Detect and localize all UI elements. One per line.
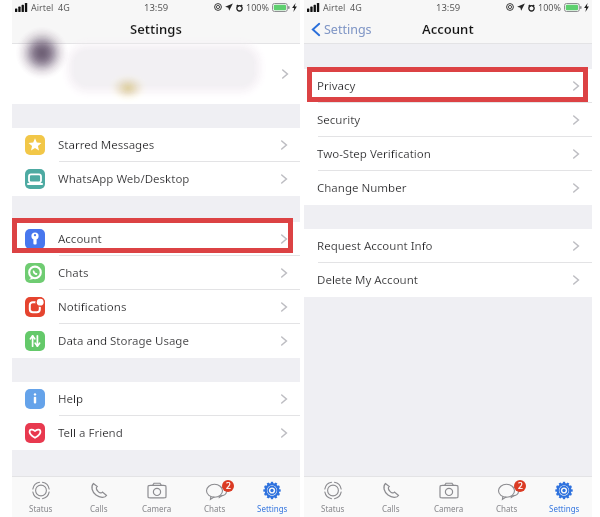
- staticText: 100%: [538, 1, 561, 13]
- staticText: Change Number: [317, 180, 407, 196]
- staticText: WhatsApp Web/Desktop: [58, 171, 190, 187]
- staticText: Notifications: [58, 299, 127, 315]
- staticText: 4G: [350, 1, 362, 13]
- staticText: Delete My Account: [317, 272, 418, 288]
- button[interactable]: Account: [12, 222, 300, 256]
- staticText: 13:59: [144, 1, 169, 14]
- staticText: Request Account Info: [317, 238, 433, 254]
- staticText: Account: [422, 20, 474, 38]
- button[interactable]: Status: [12, 477, 70, 517]
- button[interactable]: Tell a Friend: [12, 416, 300, 450]
- button[interactable]: Data and Storage Usage: [12, 324, 300, 358]
- button[interactable]: Calls: [362, 477, 420, 517]
- staticText: 4G: [58, 1, 70, 13]
- staticText: Chats: [204, 503, 226, 514]
- staticText: 2: [226, 480, 231, 492]
- staticText: Two-Step Verification: [317, 146, 431, 162]
- staticText: Settings: [549, 503, 580, 514]
- button[interactable]: Camera: [420, 477, 478, 517]
- staticText: Security: [317, 112, 361, 128]
- staticText: Account: [58, 231, 102, 247]
- button[interactable]: Calls: [70, 477, 128, 517]
- button[interactable]: 2: [186, 477, 244, 517]
- staticText: Settings: [130, 20, 182, 38]
- button[interactable]: Settings: [244, 477, 300, 517]
- button[interactable]: Request Account Info: [304, 229, 592, 263]
- button[interactable]: Privacy: [304, 69, 592, 103]
- staticText: 2: [518, 480, 523, 492]
- staticText: Settings: [324, 21, 372, 38]
- staticText: Chats: [58, 265, 89, 281]
- staticText: Settings: [257, 503, 288, 514]
- button[interactable]: Camera: [128, 477, 186, 517]
- button[interactable]: Chats: [12, 256, 300, 290]
- button[interactable]: Two-Step Verification: [304, 137, 592, 171]
- staticText: Starred Messages: [58, 137, 155, 153]
- staticText: Calls: [90, 503, 108, 514]
- button[interactable]: [12, 44, 300, 104]
- staticText: Data and Storage Usage: [58, 333, 189, 349]
- staticText: Status: [321, 503, 345, 514]
- staticText: Airtel: [323, 1, 346, 13]
- button[interactable]: Help: [12, 382, 300, 416]
- button[interactable]: Delete My Account: [304, 263, 592, 297]
- staticText: Tell a Friend: [58, 425, 123, 441]
- button[interactable]: WhatsApp Web/Desktop: [12, 162, 300, 196]
- button[interactable]: 2: [478, 477, 536, 517]
- staticText: 100%: [246, 1, 269, 13]
- button[interactable]: Starred Messages: [12, 128, 300, 162]
- staticText: Status: [29, 503, 53, 514]
- button[interactable]: Status: [304, 477, 362, 517]
- staticText: Calls: [382, 503, 400, 514]
- staticText: Chats: [496, 503, 518, 514]
- button[interactable]: Change Number: [304, 171, 592, 205]
- button[interactable]: Settings: [304, 14, 380, 44]
- staticText: Camera: [142, 503, 172, 514]
- staticText: 13:59: [436, 1, 461, 14]
- button[interactable]: Notifications: [12, 290, 300, 324]
- staticText: Airtel: [31, 1, 54, 13]
- button[interactable]: Security: [304, 103, 592, 137]
- staticText: Privacy: [317, 78, 356, 94]
- staticText: Help: [58, 391, 84, 407]
- button[interactable]: Settings: [536, 477, 592, 517]
- staticText: Camera: [434, 503, 464, 514]
